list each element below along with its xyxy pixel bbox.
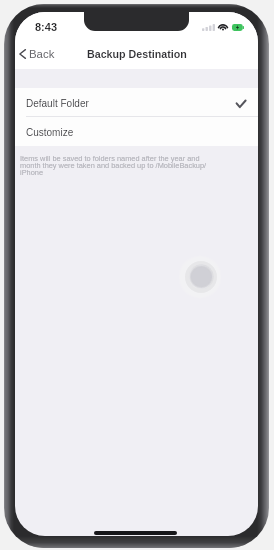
button[interactable]: Customize — [15, 117, 258, 146]
other: Cellular signal — [202, 24, 215, 31]
button[interactable]: Default Folder — [15, 88, 258, 116]
button[interactable]: Back — [16, 45, 60, 63]
staticText: Default Folder — [26, 98, 89, 109]
staticText: Backup Destination — [87, 48, 187, 60]
staticText: Customize — [26, 127, 74, 138]
other: Wi-Fi — [218, 23, 228, 30]
other: Battery charging — [232, 24, 244, 31]
staticText: Items will be saved to folders named aft… — [20, 154, 216, 176]
staticText: 8:43 — [35, 21, 58, 33]
staticText: Back — [29, 48, 55, 61]
